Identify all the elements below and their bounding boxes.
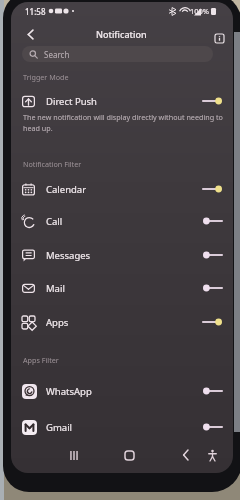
staticText: WhatsApp <box>46 385 92 398</box>
staticText: Notification Filter <box>23 159 82 169</box>
staticText: Apps <box>46 316 69 329</box>
button[interactable]: WhatsApp <box>11 376 233 406</box>
staticText: Apps Filter <box>23 355 59 365</box>
button[interactable]: Back <box>175 444 197 466</box>
staticText: The new notification will display direct… <box>23 112 223 134</box>
button[interactable]: Recent apps <box>63 444 85 466</box>
button[interactable]: Off <box>202 281 223 295</box>
button[interactable]: Calendar <box>11 174 233 204</box>
staticText: Search <box>44 49 70 60</box>
button[interactable]: Information <box>211 30 227 46</box>
button[interactable]: On <box>202 182 223 196</box>
button[interactable]: Off <box>202 214 223 228</box>
staticText: Call <box>46 215 63 228</box>
staticText: 100% <box>190 6 210 16</box>
button[interactable]: Messages <box>11 240 233 270</box>
button[interactable]: Call <box>11 206 233 236</box>
button[interactable]: Search <box>22 46 213 62</box>
staticText: Messages <box>46 249 91 262</box>
button[interactable]: Direct Push <box>11 86 233 116</box>
staticText: Trigger Mode <box>23 72 69 82</box>
button[interactable]: Gmail <box>11 412 233 442</box>
staticText: Direct Push <box>46 95 97 108</box>
button[interactable]: Apps <box>11 307 233 337</box>
button[interactable]: On <box>202 315 223 329</box>
staticText: 11:58 <box>25 6 46 17</box>
button[interactable]: Back <box>21 25 39 43</box>
button[interactable]: Mail <box>11 273 233 303</box>
button[interactable]: Off <box>202 384 223 398</box>
staticText: Notification <box>96 28 147 40</box>
button[interactable]: Home <box>118 444 140 466</box>
staticText: Calendar <box>46 183 87 196</box>
button[interactable]: Off <box>202 420 223 434</box>
button[interactable]: Off <box>202 248 223 262</box>
button[interactable]: Accessibility <box>202 445 222 465</box>
staticText: Gmail <box>46 421 73 434</box>
button[interactable]: On <box>202 94 223 108</box>
staticText: Mail <box>46 282 65 295</box>
